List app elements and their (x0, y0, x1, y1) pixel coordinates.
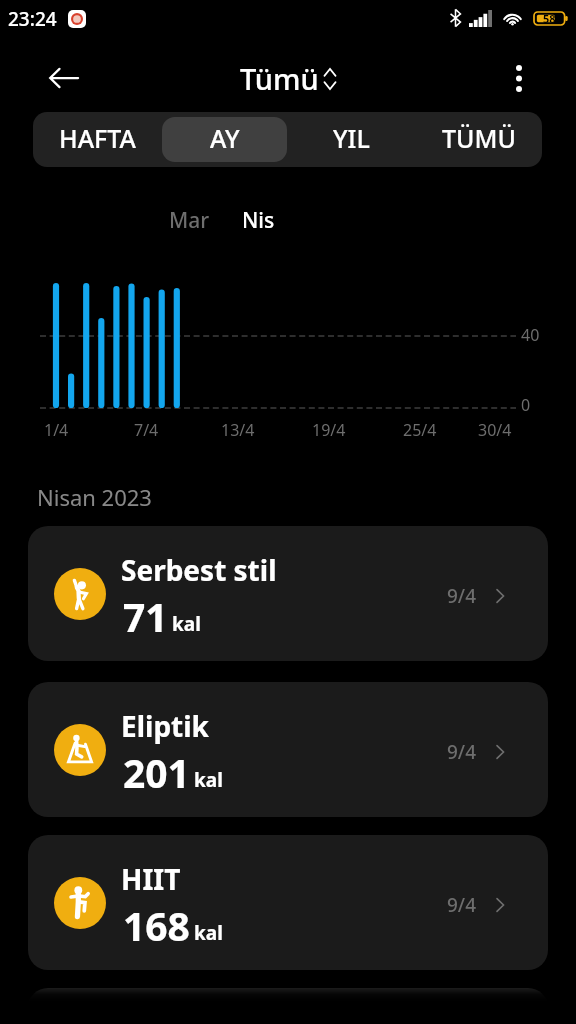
staticText: 19/4 (312, 419, 346, 441)
staticText: HAFTA (59, 121, 136, 155)
staticText: 71 (123, 590, 168, 643)
button[interactable]: AY (162, 117, 287, 162)
staticText: kal (172, 611, 201, 637)
staticText: 0 (521, 394, 531, 416)
button[interactable]: TÜMÜ (416, 117, 541, 162)
staticText: 58 (543, 11, 556, 26)
staticText: 201 (123, 746, 190, 799)
staticText: Mar (169, 206, 210, 235)
button[interactable]: Tümü (240, 59, 337, 98)
staticText: Eliptik (121, 707, 209, 745)
staticText: 25/4 (403, 419, 437, 441)
staticText: 168 (123, 899, 190, 952)
button[interactable]: HAFTA (34, 117, 160, 162)
button[interactable]: Nis (230, 198, 287, 242)
staticText: HIIT (121, 860, 181, 898)
staticText: TÜMÜ (442, 121, 516, 155)
staticText: kal (194, 920, 223, 946)
button[interactable]: More options (499, 58, 539, 98)
button[interactable]: Eliptik (28, 682, 548, 817)
staticText: 1/4 (44, 419, 69, 441)
staticText: kal (194, 767, 223, 793)
staticText: 23:24 (8, 6, 57, 32)
staticText: YIL (333, 121, 370, 155)
button[interactable]: HIIT (28, 835, 548, 970)
staticText: 13/4 (221, 419, 255, 441)
staticText: 7/4 (134, 419, 159, 441)
button[interactable]: Serbest stil (28, 526, 548, 661)
staticText: 40 (521, 324, 540, 346)
button[interactable]: Koşu (28, 988, 548, 1024)
staticText: AY (210, 121, 240, 155)
staticText: 9/4 (447, 892, 477, 918)
staticText: 30/4 (478, 419, 512, 441)
staticText: Nisan 2023 (37, 482, 152, 512)
button[interactable]: Mar (157, 198, 222, 242)
staticText: 9/4 (447, 583, 477, 609)
staticText: 9/4 (447, 739, 477, 765)
button[interactable]: Back (42, 56, 86, 100)
staticText: Nis (242, 206, 275, 235)
button[interactable]: YIL (289, 117, 414, 162)
staticText: Tümü (240, 59, 319, 98)
staticText: Serbest stil (121, 551, 277, 589)
